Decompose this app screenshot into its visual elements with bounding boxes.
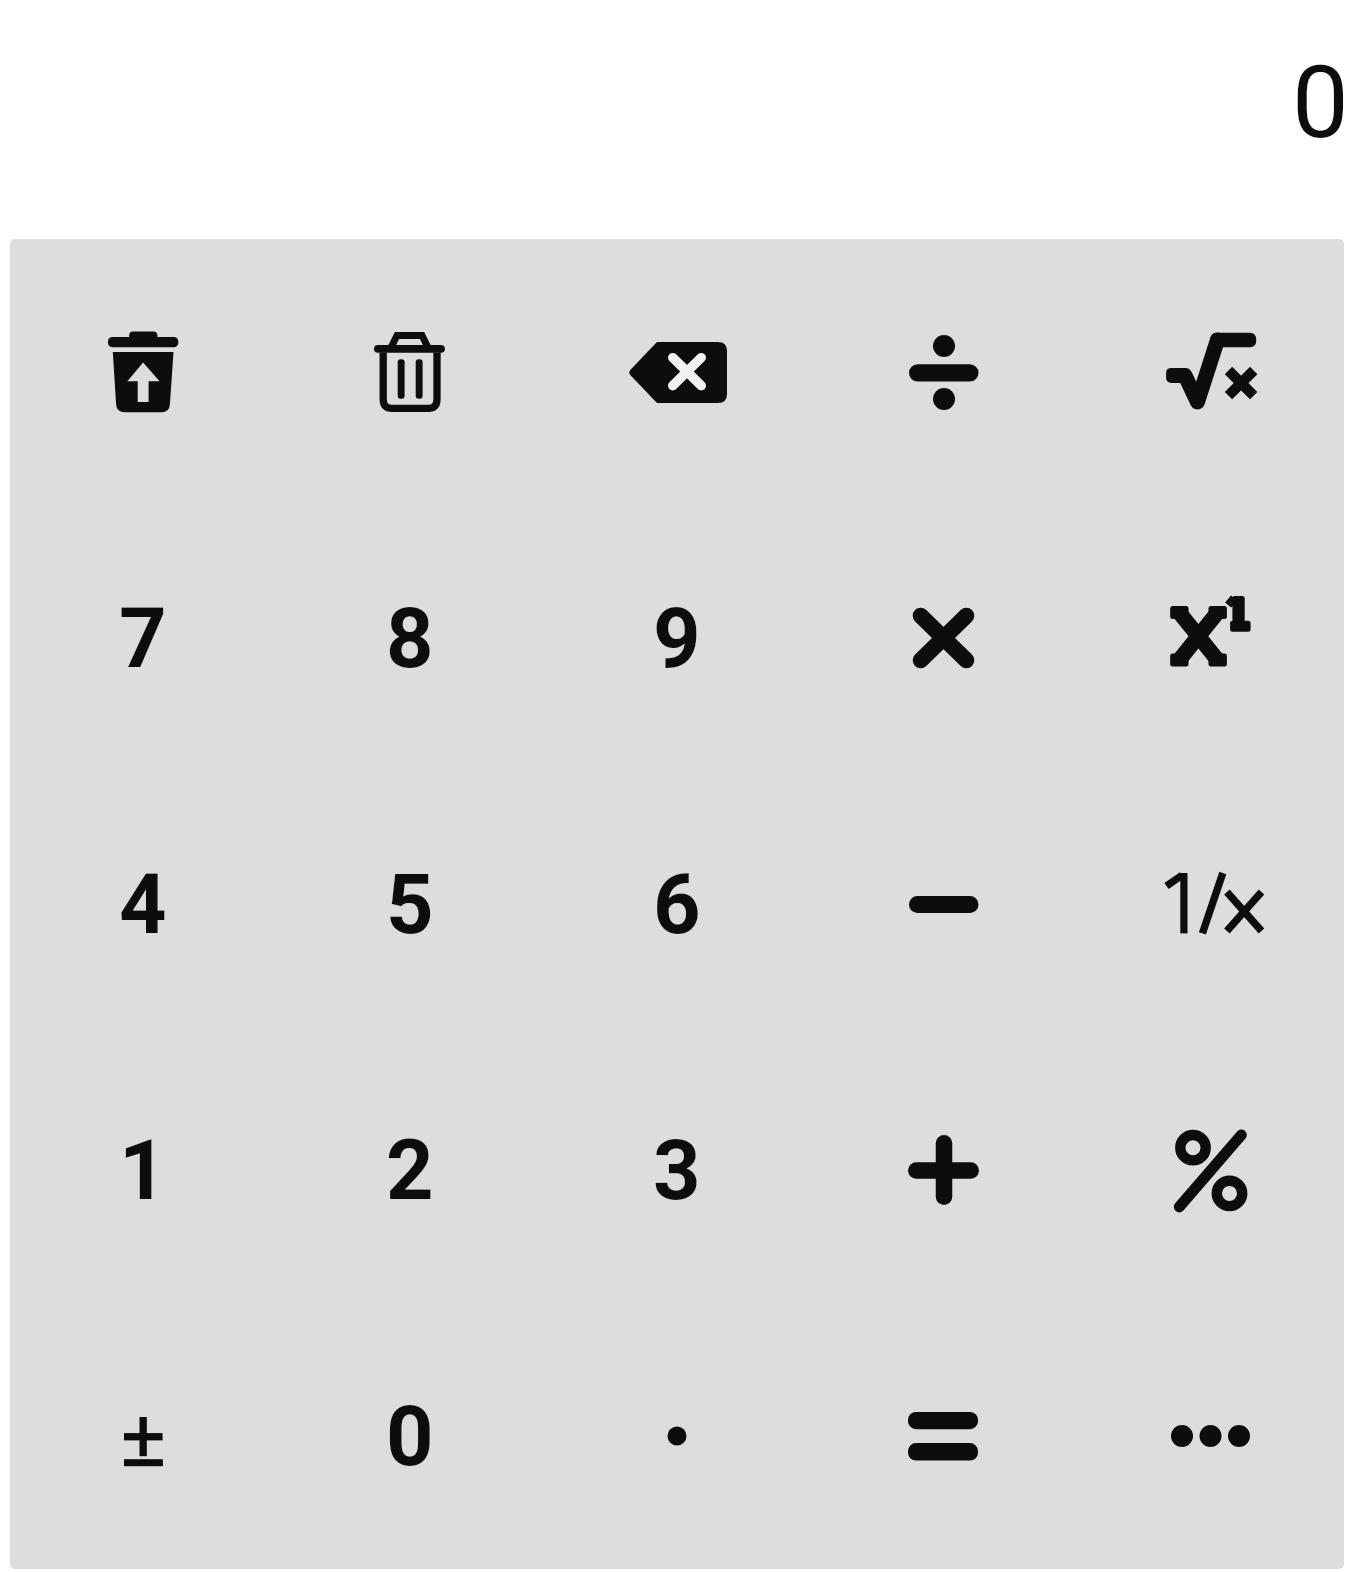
button[interactable] bbox=[543, 1303, 810, 1569]
button[interactable] bbox=[276, 239, 543, 505]
button[interactable] bbox=[810, 239, 1077, 505]
button[interactable] bbox=[543, 239, 810, 505]
staticText: 3 bbox=[653, 1122, 701, 1219]
button[interactable] bbox=[810, 771, 1077, 1037]
button[interactable] bbox=[1077, 1303, 1344, 1569]
button[interactable] bbox=[810, 1303, 1077, 1569]
button[interactable]: 1 bbox=[10, 1037, 276, 1303]
button[interactable] bbox=[1077, 1037, 1344, 1303]
staticText: 9 bbox=[653, 590, 701, 687]
button[interactable]: 7 bbox=[10, 505, 276, 771]
staticText: 4 bbox=[119, 856, 167, 953]
button[interactable] bbox=[10, 1303, 276, 1569]
button[interactable]: 3 bbox=[543, 1037, 810, 1303]
button[interactable] bbox=[1077, 505, 1344, 771]
button[interactable] bbox=[10, 239, 276, 505]
button[interactable]: 0 bbox=[276, 1303, 543, 1569]
button[interactable] bbox=[810, 505, 1077, 771]
staticText: 6 bbox=[653, 856, 701, 953]
staticText: 1 bbox=[119, 1122, 167, 1219]
button[interactable]: 6 bbox=[543, 771, 810, 1037]
button[interactable]: 9 bbox=[543, 505, 810, 771]
button[interactable]: 4 bbox=[10, 771, 276, 1037]
button[interactable] bbox=[810, 1037, 1077, 1303]
button[interactable]: 5 bbox=[276, 771, 543, 1037]
staticText: 0 bbox=[1292, 43, 1349, 161]
button[interactable]: 8 bbox=[276, 505, 543, 771]
staticText: 5 bbox=[386, 856, 434, 953]
button[interactable] bbox=[1077, 239, 1344, 505]
staticText: 8 bbox=[386, 590, 434, 687]
staticText: 0 bbox=[386, 1388, 434, 1485]
staticText: 7 bbox=[119, 590, 167, 687]
button[interactable] bbox=[1077, 771, 1344, 1037]
staticText: 2 bbox=[386, 1122, 434, 1219]
button[interactable]: 2 bbox=[276, 1037, 543, 1303]
